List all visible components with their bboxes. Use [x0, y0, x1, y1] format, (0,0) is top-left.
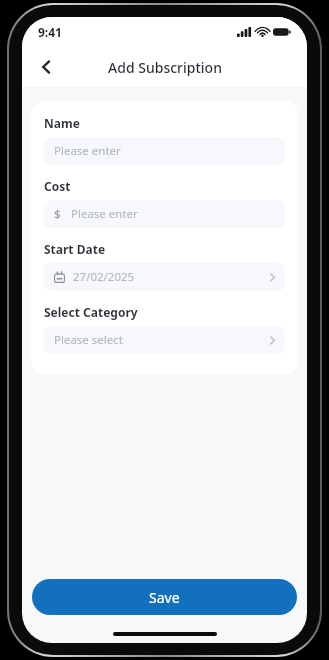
- staticText: 9:41: [38, 24, 62, 40]
- staticText: $: [54, 206, 61, 222]
- button[interactable]: Please select: [44, 326, 285, 354]
- staticText: Cost: [44, 178, 71, 194]
- staticText: Please enter: [71, 206, 138, 222]
- staticText: Add Subscription: [108, 58, 222, 77]
- staticText: Please select: [54, 332, 123, 348]
- staticText: Select Category: [44, 304, 138, 320]
- staticText: Start Date: [44, 241, 106, 257]
- button[interactable]: Save: [32, 579, 297, 615]
- staticText: Name: [44, 115, 80, 131]
- staticText: Save: [149, 588, 180, 607]
- staticText: 27/02/2025: [73, 269, 135, 285]
- staticText: Please enter: [54, 143, 121, 159]
- button[interactable]: Back: [30, 51, 62, 83]
- button[interactable]: 27/02/2025: [44, 263, 285, 291]
